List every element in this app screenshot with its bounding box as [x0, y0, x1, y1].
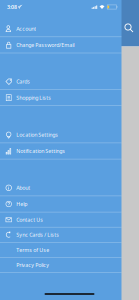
staticText: Terms of Use: [16, 246, 49, 253]
button[interactable]: Contact Us: [0, 212, 121, 227]
staticText: Cards: [16, 78, 30, 85]
staticText: 3:08: [7, 3, 17, 11]
staticText: Privacy Policy: [16, 261, 49, 268]
staticText: Location Settings: [16, 131, 58, 138]
button[interactable]: Terms of Use: [0, 243, 121, 258]
staticText: Change Password/Email: [16, 41, 74, 48]
button[interactable]: Help: [0, 196, 121, 212]
button[interactable]: Sync Cards / Lists: [0, 227, 121, 243]
button[interactable]: Cards: [0, 74, 121, 90]
button[interactable]: About: [0, 180, 121, 196]
staticText: Help: [16, 200, 27, 208]
staticText: Notification Settings: [16, 147, 65, 155]
button[interactable]: Search: [122, 21, 135, 34]
button[interactable]: Shopping Lists: [0, 90, 121, 106]
staticText: Shopping Lists: [16, 94, 51, 101]
staticText: About: [16, 184, 30, 191]
button[interactable]: Change Password/Email: [0, 37, 121, 53]
button[interactable]: Privacy Policy: [0, 258, 121, 273]
staticText: Account: [16, 25, 36, 32]
button[interactable]: Notification Settings: [0, 143, 121, 159]
staticText: Contact Us: [16, 216, 43, 223]
button[interactable]: Account: [0, 21, 121, 37]
button[interactable]: Location Settings: [0, 127, 121, 143]
staticText: Sync Cards / Lists: [16, 231, 59, 238]
